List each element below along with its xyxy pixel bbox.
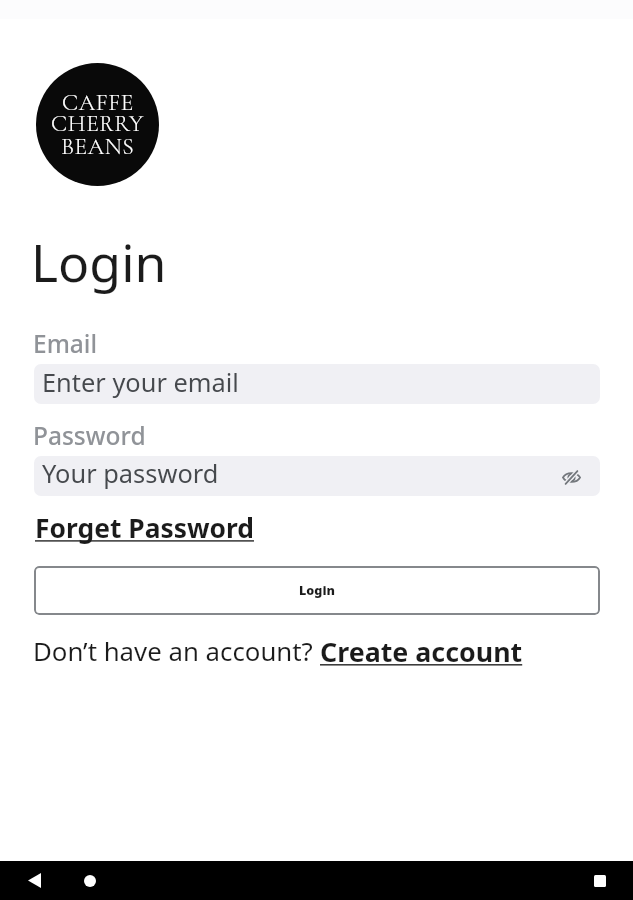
button[interactable]: Create account [320, 633, 523, 670]
staticText: Don’t have an account? [33, 633, 320, 668]
button[interactable]: Show password [562, 468, 581, 487]
staticText: Email [33, 327, 98, 360]
staticText: Login [31, 227, 167, 297]
button[interactable]: Enter your email [34, 364, 600, 404]
staticText: Forget Password [35, 510, 254, 546]
button[interactable]: Home [68, 861, 112, 900]
staticText: BEANS [61, 132, 135, 160]
staticText: CHERRY [51, 109, 144, 137]
button[interactable]: Your password [34, 456, 600, 496]
staticText: Your password [42, 456, 219, 491]
button[interactable]: Login [34, 566, 600, 615]
button[interactable]: Forget Password [35, 510, 254, 546]
staticText: Enter your email [42, 365, 239, 400]
staticText: Login [299, 582, 335, 599]
staticText: Create account [320, 633, 523, 670]
button[interactable]: Back [0, 861, 68, 900]
staticText: Password [33, 419, 146, 452]
staticText: CAFFE [62, 88, 134, 116]
button[interactable]: Recent apps [566, 861, 633, 900]
